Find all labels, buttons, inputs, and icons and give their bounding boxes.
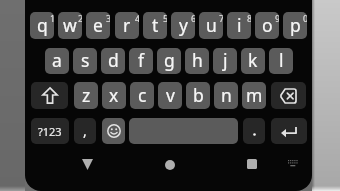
- button[interactable]: z: [74, 82, 98, 109]
- staticText: 2: [78, 12, 82, 24]
- staticText: u: [206, 13, 217, 37]
- button[interactable]: u: [199, 12, 223, 39]
- button[interactable]: [102, 118, 125, 144]
- staticText: 5: [163, 12, 167, 24]
- button[interactable]: g: [157, 48, 181, 74]
- button[interactable]: ?123: [31, 118, 69, 144]
- button[interactable]: m: [242, 82, 266, 109]
- staticText: h: [192, 48, 203, 72]
- staticText: m: [246, 83, 263, 107]
- button[interactable]: d: [101, 48, 125, 74]
- button[interactable]: n: [214, 82, 238, 109]
- button[interactable]: j: [213, 48, 237, 74]
- staticText: 0: [303, 12, 307, 24]
- button[interactable]: v: [158, 82, 182, 109]
- staticText: j: [223, 48, 228, 72]
- button[interactable]: ,: [74, 118, 96, 144]
- staticText: 7: [219, 12, 223, 24]
- button[interactable]: t: [143, 12, 167, 39]
- staticText: p: [290, 13, 301, 37]
- button[interactable]: e: [86, 12, 110, 39]
- staticText: 9: [275, 12, 279, 24]
- button[interactable]: [129, 118, 238, 144]
- staticText: ,: [83, 121, 87, 140]
- staticText: o: [262, 13, 273, 37]
- button[interactable]: [271, 118, 307, 144]
- button[interactable]: y: [171, 12, 195, 39]
- button[interactable]: [280, 151, 305, 176]
- staticText: b: [193, 83, 204, 107]
- staticText: k: [248, 48, 258, 72]
- staticText: 6: [191, 12, 195, 24]
- staticText: r: [123, 13, 131, 37]
- staticText: f: [138, 48, 145, 72]
- staticText: 1: [50, 12, 54, 24]
- staticText: g: [164, 48, 175, 72]
- button[interactable]: [74, 151, 101, 178]
- button[interactable]: w: [58, 12, 82, 39]
- staticText: ?123: [38, 124, 62, 139]
- staticText: 4: [135, 12, 139, 24]
- staticText: a: [52, 48, 62, 72]
- staticText: z: [82, 83, 91, 107]
- button[interactable]: a: [45, 48, 69, 74]
- staticText: l: [279, 48, 284, 72]
- button[interactable]: o: [255, 12, 279, 39]
- staticText: y: [179, 13, 188, 37]
- button[interactable]: h: [185, 48, 209, 74]
- button[interactable]: [31, 82, 68, 109]
- button[interactable]: i: [227, 12, 251, 39]
- staticText: q: [37, 13, 48, 37]
- staticText: s: [81, 48, 90, 72]
- button[interactable]: s: [73, 48, 97, 74]
- button[interactable]: q: [30, 12, 54, 39]
- staticText: n: [221, 83, 232, 107]
- button[interactable]: c: [130, 82, 154, 109]
- staticText: x: [109, 83, 119, 107]
- button[interactable]: r: [115, 12, 139, 39]
- staticText: v: [166, 83, 175, 107]
- button[interactable]: [238, 150, 265, 177]
- button[interactable]: f: [129, 48, 153, 74]
- button[interactable]: x: [102, 82, 126, 109]
- button[interactable]: [271, 82, 306, 109]
- staticText: e: [93, 13, 103, 37]
- staticText: t: [152, 13, 159, 37]
- staticText: i: [237, 13, 242, 37]
- button[interactable]: [243, 118, 265, 144]
- button[interactable]: p: [283, 12, 307, 39]
- staticText: w: [63, 13, 77, 37]
- button[interactable]: k: [241, 48, 265, 74]
- staticText: 3: [106, 12, 110, 24]
- staticText: c: [138, 83, 147, 107]
- button[interactable]: b: [186, 82, 210, 109]
- staticText: 8: [247, 12, 251, 24]
- button[interactable]: [156, 151, 183, 178]
- button[interactable]: l: [269, 48, 293, 74]
- staticText: d: [108, 48, 119, 72]
